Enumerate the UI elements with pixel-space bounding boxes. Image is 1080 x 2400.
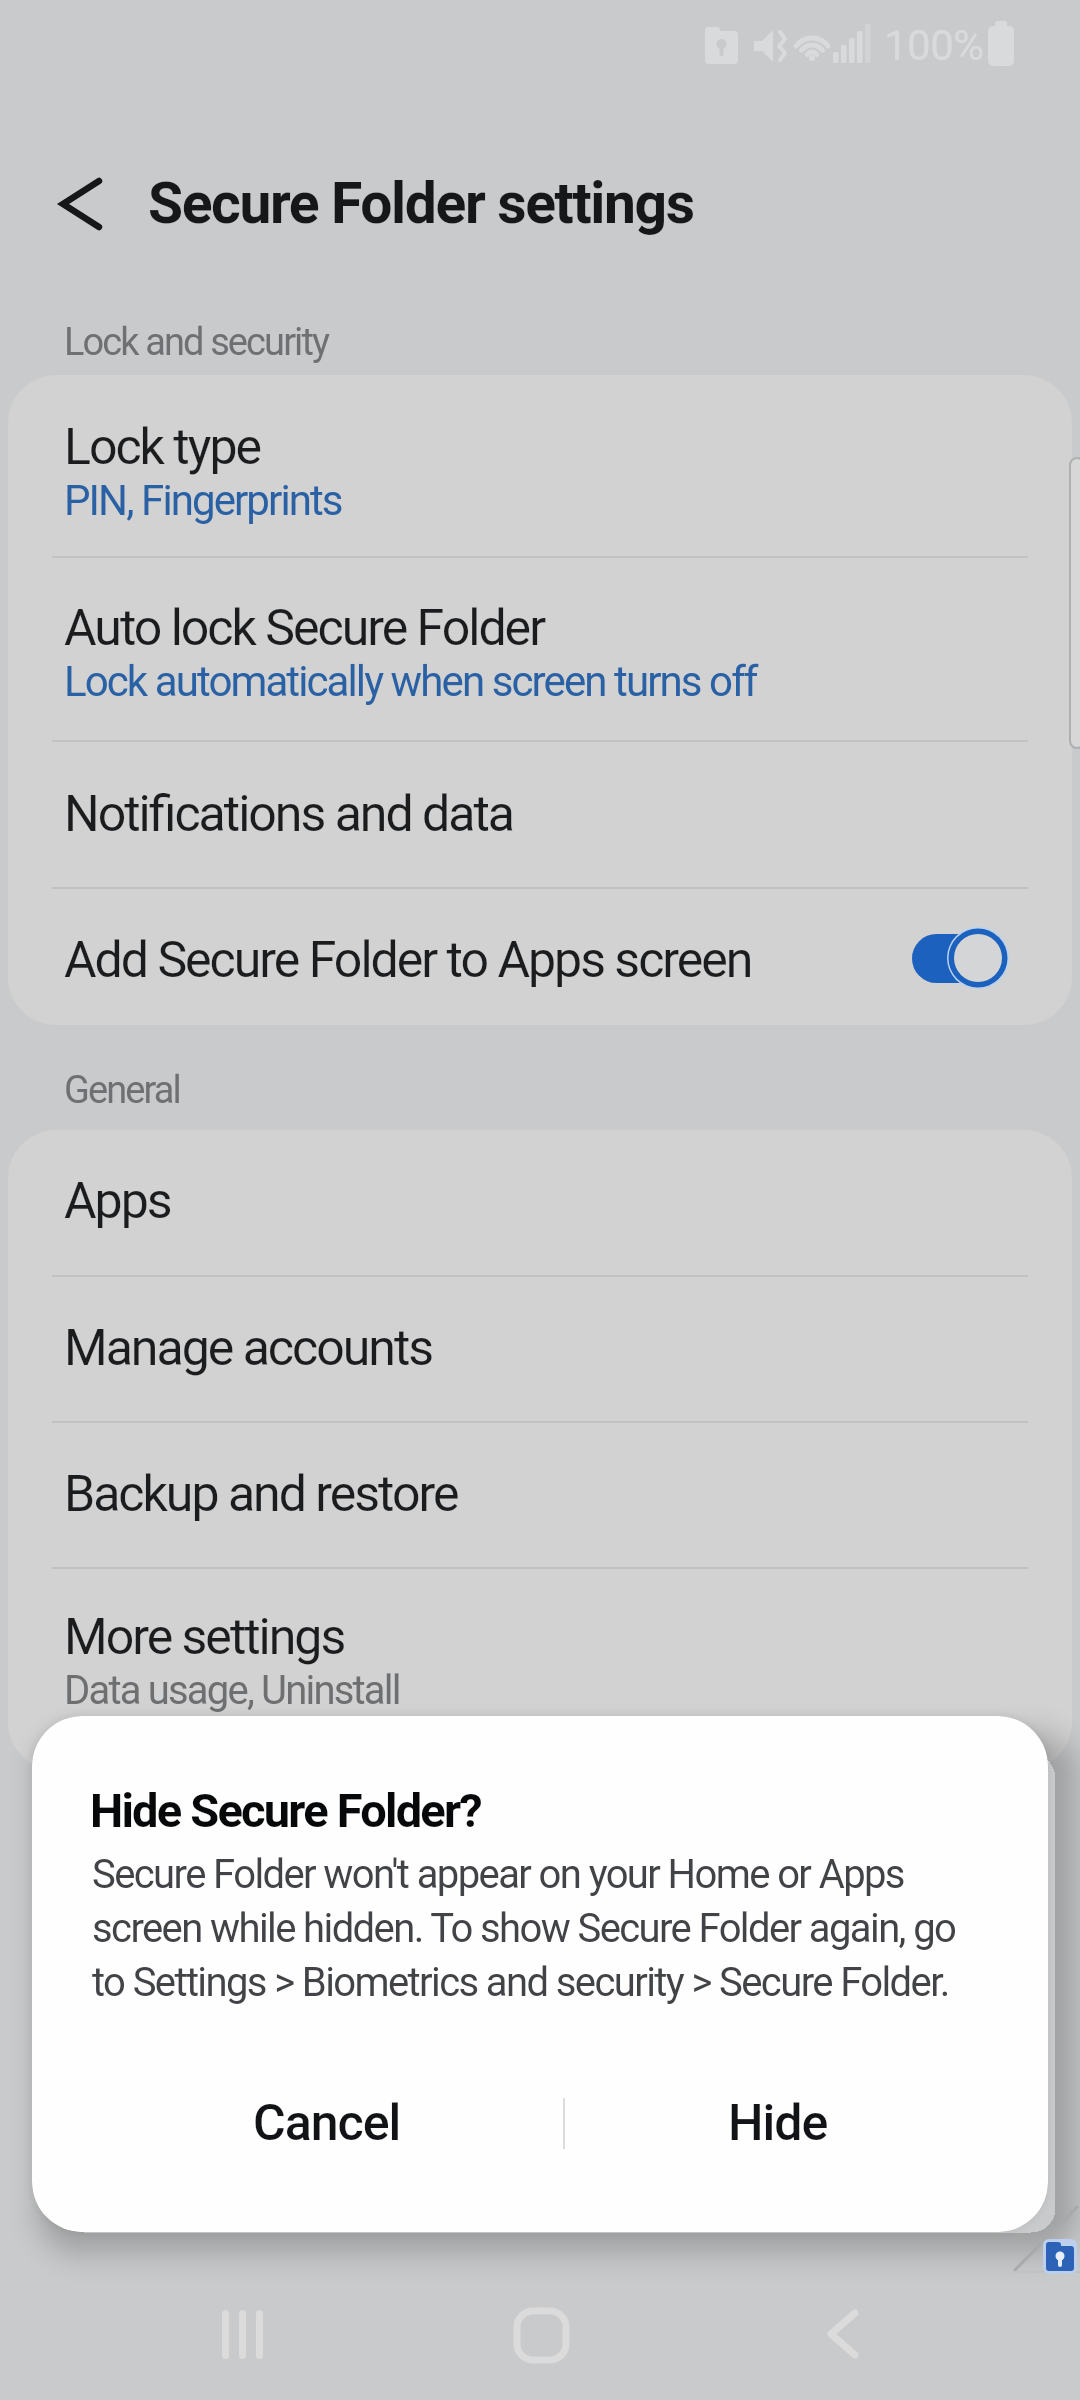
staticText: Secure Folder won't appear on your Home … — [92, 1851, 904, 1898]
button[interactable] — [8, 1277, 1072, 1421]
button[interactable] — [8, 1423, 1072, 1567]
staticText: PIN, Fingerprints — [64, 476, 342, 525]
button[interactable] — [8, 889, 1072, 1025]
button[interactable]: Cancel — [180, 2063, 474, 2183]
button[interactable] — [8, 558, 1072, 740]
button[interactable] — [8, 742, 1072, 887]
button[interactable] — [912, 934, 1008, 983]
button[interactable] — [40, 170, 110, 240]
staticText: Secure Folder settings — [148, 170, 694, 237]
staticText: Lock and security — [64, 320, 329, 365]
staticText: Lock automatically when screen turns off — [64, 657, 757, 706]
staticText: Manage accounts — [64, 1319, 433, 1378]
button[interactable] — [190, 2300, 290, 2370]
staticText: More settings — [64, 1608, 345, 1667]
button[interactable] — [8, 1569, 1072, 1749]
staticText: Apps — [64, 1172, 171, 1231]
button[interactable] — [8, 380, 1072, 556]
staticText: Add Secure Folder to Apps screen — [64, 931, 752, 990]
button[interactable]: Hide — [631, 2063, 925, 2183]
staticText: Backup and restore — [64, 1465, 458, 1524]
staticText: General — [64, 1068, 180, 1113]
staticText: Auto lock Secure Folder — [64, 599, 545, 658]
button[interactable] — [795, 2300, 895, 2370]
staticText: Data usage, Uninstall — [64, 1667, 400, 1714]
button[interactable] — [8, 1134, 1072, 1275]
staticText: screen while hidden. To show Secure Fold… — [92, 1905, 956, 1952]
staticText: Hide Secure Folder? — [90, 1783, 481, 1838]
staticText: Notifications and data — [64, 785, 513, 844]
staticText: to Settings > Biometrics and security > … — [92, 1959, 949, 2006]
staticText: Lock type — [64, 418, 260, 477]
staticText: Cancel — [253, 2094, 401, 2153]
button[interactable] — [492, 2300, 592, 2370]
staticText: Hide — [728, 2094, 828, 2153]
staticText: 100% — [884, 21, 984, 70]
